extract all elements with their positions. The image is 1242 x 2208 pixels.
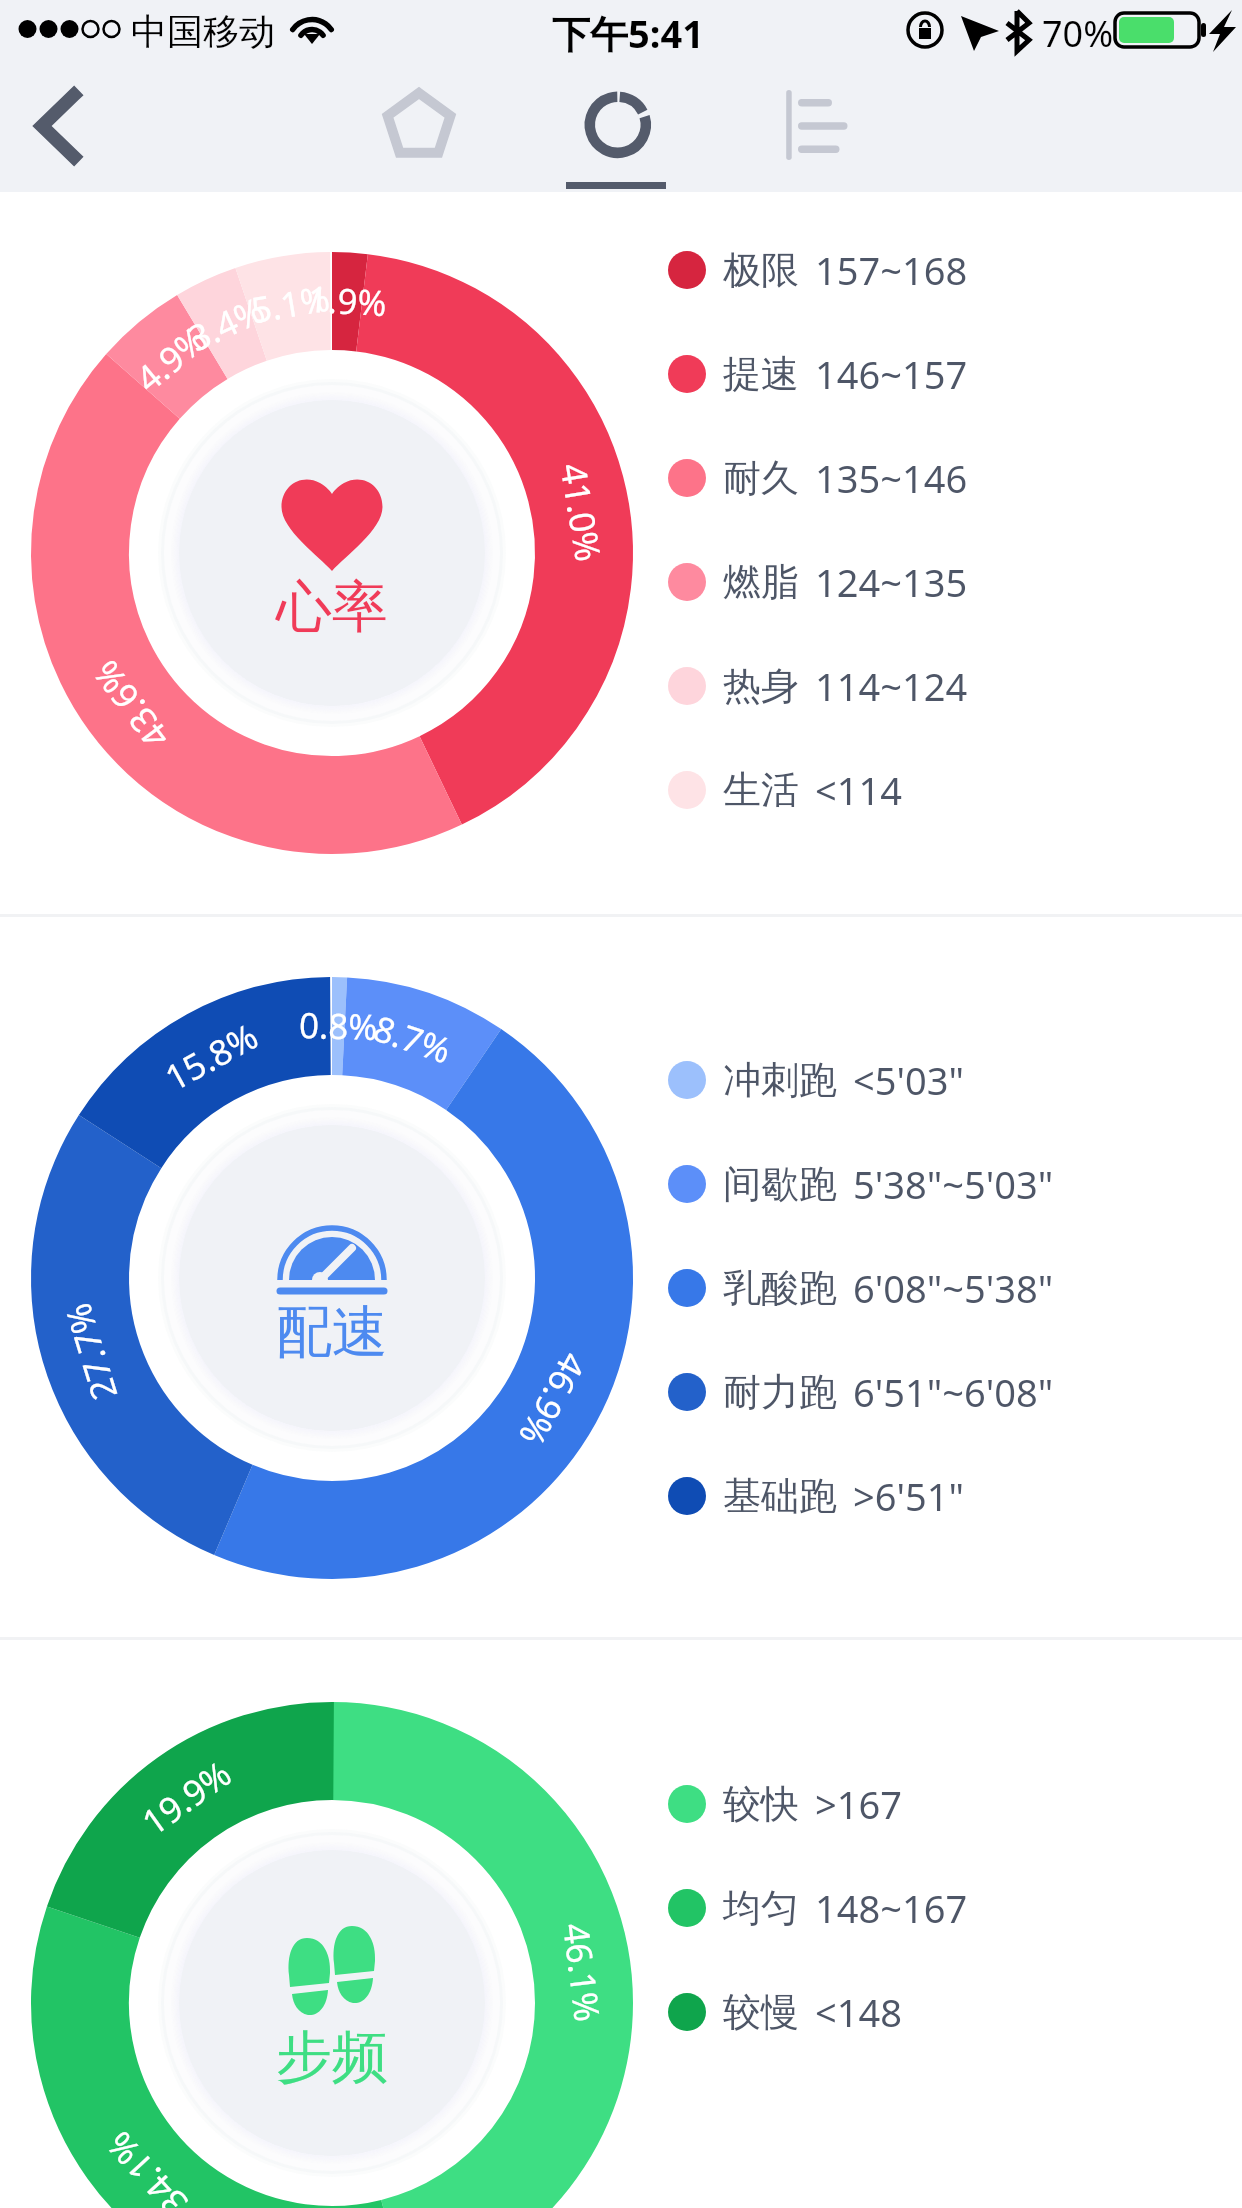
- button[interactable]: 较快: [640, 1752, 1200, 1856]
- button[interactable]: 乳酸跑: [640, 1236, 1200, 1340]
- staticText: 基础跑: [723, 1472, 837, 1520]
- staticText: 耐力跑: [723, 1368, 837, 1416]
- staticText: >6'51": [853, 1470, 964, 1522]
- staticText: 46.1%: [552, 1920, 612, 2024]
- staticText: 提速: [723, 350, 799, 398]
- staticText: 124~135: [815, 556, 968, 608]
- staticText: 157~168: [815, 244, 968, 296]
- staticText: 冲刺跑: [723, 1056, 837, 1104]
- button[interactable]: 燃脂: [640, 530, 1200, 634]
- button[interactable]: 耐久: [640, 426, 1200, 530]
- staticText: 41.0%: [549, 460, 613, 565]
- button[interactable]: 较慢: [640, 1960, 1200, 2064]
- staticText: <148: [815, 1986, 902, 2038]
- staticText: 心率: [276, 572, 388, 643]
- staticText: 间歇跑: [723, 1160, 837, 1208]
- staticText: 步频: [276, 2022, 388, 2093]
- staticText: 34.1%: [95, 2121, 198, 2208]
- staticText: 3.4%: [180, 285, 272, 362]
- staticText: 43.6%: [82, 651, 180, 758]
- button[interactable]: 热身: [640, 634, 1200, 738]
- staticText: 较快: [723, 1780, 799, 1828]
- button[interactable]: 极限: [640, 218, 1200, 322]
- button[interactable]: 提速: [640, 322, 1200, 426]
- button[interactable]: 生活: [640, 738, 1200, 842]
- staticText: 配速: [276, 1297, 388, 1368]
- staticText: <5'03": [853, 1054, 964, 1106]
- staticText: 27.7%: [53, 1297, 128, 1406]
- button[interactable]: 耐力跑: [640, 1340, 1200, 1444]
- button[interactable]: 步频: [31, 1702, 633, 2208]
- staticText: 6'08"~5'38": [853, 1262, 1054, 1314]
- button[interactable]: 均匀: [640, 1856, 1200, 1960]
- staticText: 114~124: [815, 660, 968, 712]
- button[interactable]: 间歇跑: [640, 1132, 1200, 1236]
- staticText: 燃脂: [723, 558, 799, 606]
- staticText: 耐久: [723, 454, 799, 502]
- staticText: 极限: [723, 246, 799, 294]
- button[interactable]: Back: [0, 66, 126, 192]
- staticText: 生活: [723, 766, 799, 814]
- staticText: 8.7%: [367, 1004, 458, 1074]
- staticText: 15.8%: [156, 1012, 266, 1102]
- staticText: 135~146: [815, 452, 968, 504]
- staticText: 均匀: [723, 1884, 799, 1932]
- staticText: 热身: [723, 662, 799, 710]
- staticText: 中国移动: [131, 9, 275, 54]
- staticText: 46.9%: [508, 1344, 598, 1454]
- staticText: >167: [815, 1778, 902, 1830]
- button[interactable]: Details: [755, 66, 895, 192]
- staticText: 148~167: [815, 1882, 968, 1934]
- staticText: 5.1%: [248, 274, 333, 334]
- button[interactable]: 基础跑: [640, 1444, 1200, 1548]
- staticText: 下午5:41: [552, 7, 704, 59]
- staticText: 70%: [1042, 9, 1114, 58]
- button[interactable]: 配速: [31, 977, 633, 1579]
- staticText: 4.9%: [126, 315, 217, 402]
- staticText: 19.9%: [132, 1749, 241, 1846]
- staticText: 0.8%: [298, 1001, 379, 1051]
- staticText: 146~157: [815, 348, 968, 400]
- staticText: 5'38"~5'03": [853, 1158, 1054, 1210]
- button[interactable]: 心率: [31, 252, 633, 854]
- staticText: <114: [815, 764, 902, 816]
- staticText: 6'51"~6'08": [853, 1366, 1054, 1418]
- staticText: 1.9%: [307, 275, 388, 327]
- staticText: 较慢: [723, 1988, 799, 2036]
- button[interactable]: 冲刺跑: [640, 1028, 1200, 1132]
- staticText: 乳酸跑: [723, 1264, 837, 1312]
- button[interactable]: Zones: [547, 66, 687, 192]
- button[interactable]: Summary: [349, 66, 489, 192]
